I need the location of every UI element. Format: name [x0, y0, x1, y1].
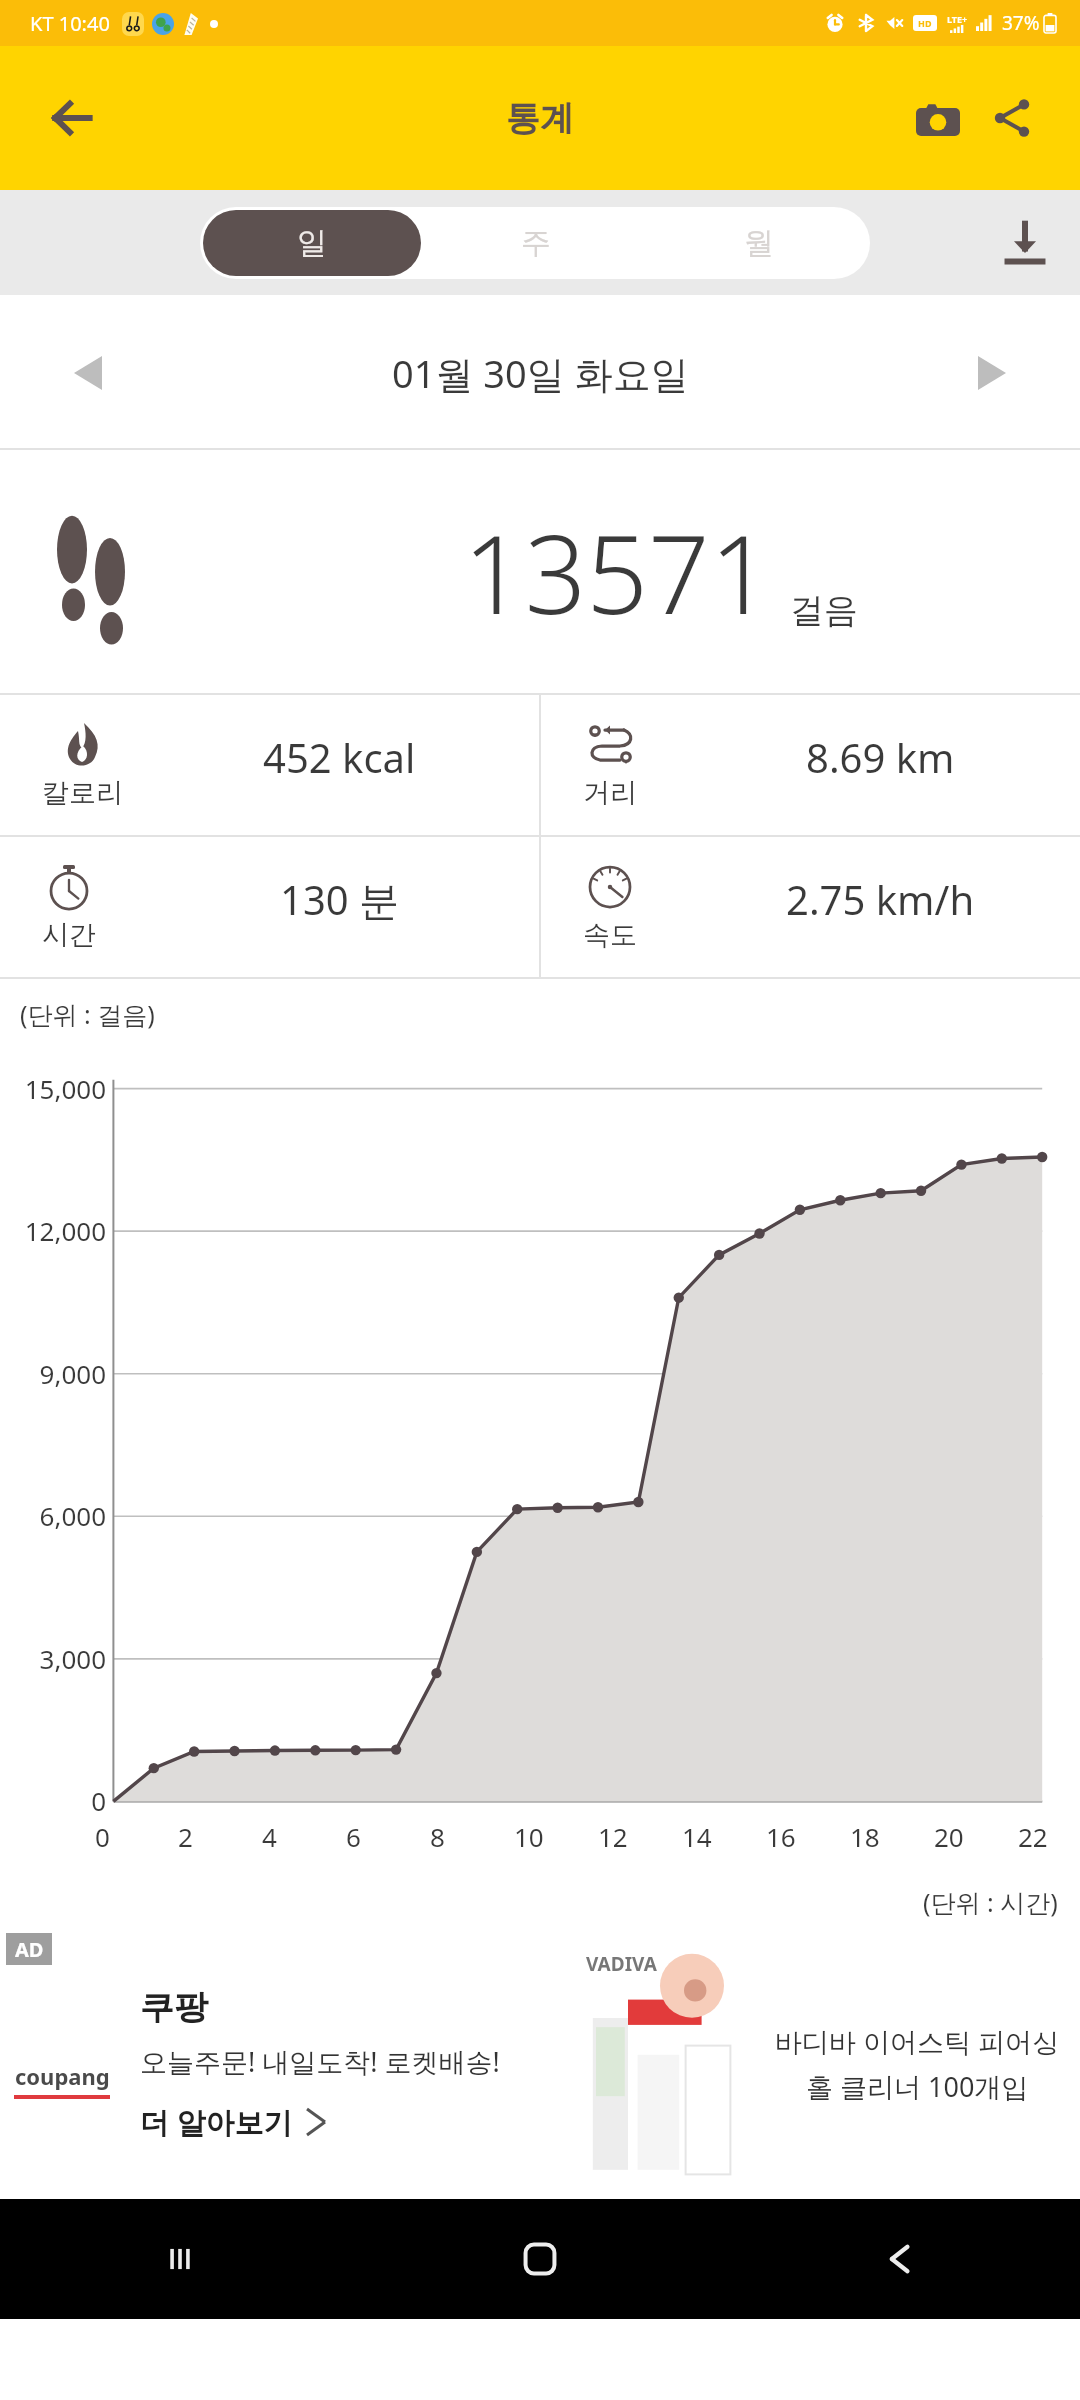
button[interactable]: 주	[427, 210, 644, 276]
staticText: (단위 : 걸음)	[20, 997, 155, 1031]
staticText: 월	[744, 224, 774, 262]
staticText: 3,000	[39, 1641, 106, 1676]
staticText: AD	[15, 1936, 44, 1963]
staticText: 8.69 km	[806, 730, 955, 784]
staticText: 8	[430, 1819, 445, 1854]
button[interactable]: Recents	[0, 2199, 360, 2319]
staticText: 통계	[506, 97, 574, 140]
staticText: 10	[514, 1819, 544, 1854]
staticText: 바디바 이어스틱 피어싱	[775, 2023, 1060, 2060]
staticText: 20	[934, 1819, 964, 1854]
staticText: HD	[918, 17, 932, 29]
staticText: 22	[1018, 1819, 1048, 1854]
staticText: 4	[262, 1819, 277, 1854]
staticText: 오늘주문! 내일도착! 로켓배송!	[140, 2043, 500, 2080]
staticText: 일	[297, 224, 327, 262]
staticText: 거리	[583, 776, 637, 810]
staticText: 9,000	[39, 1356, 106, 1391]
staticText: 더 알아보기	[140, 2102, 293, 2142]
staticText: 주	[521, 224, 551, 262]
staticText: 쿠팡	[140, 1986, 208, 2029]
button[interactable]: Next day	[952, 333, 1032, 413]
staticText: 452 kcal	[263, 730, 416, 784]
button[interactable]: 거리	[541, 695, 1080, 835]
staticText: 18	[850, 1819, 880, 1854]
staticText: 12,000	[24, 1213, 106, 1248]
staticText: 0	[91, 1783, 106, 1818]
button[interactable]: Camera	[906, 86, 970, 150]
staticText: 홀 클리너 100개입	[806, 2068, 1029, 2105]
staticText: 시간	[42, 918, 96, 952]
button[interactable]: 월	[650, 210, 867, 276]
staticText: 01월 30일 화요일	[392, 347, 689, 399]
staticText: 2	[178, 1819, 193, 1854]
button[interactable]: Back	[40, 86, 104, 150]
staticText: 속도	[583, 918, 637, 952]
staticText: 2.75 km/h	[786, 872, 975, 926]
staticText: 6	[346, 1819, 361, 1854]
button[interactable]: Back	[720, 2199, 1080, 2319]
button[interactable]: Home	[360, 2199, 720, 2319]
button[interactable]: 속도	[541, 837, 1080, 977]
staticText: coupang	[15, 2061, 110, 2091]
button[interactable]: 시간	[0, 837, 539, 977]
staticText: 12	[598, 1819, 628, 1854]
staticText: 걸음	[790, 589, 858, 632]
staticText: 37%	[1002, 10, 1040, 36]
staticText: KT 10:40	[30, 10, 110, 37]
staticText: (단위 : 시간)	[923, 1885, 1058, 1919]
staticText: VADIVA	[586, 1951, 657, 1977]
staticText: 14	[682, 1819, 712, 1854]
button[interactable]: 칼로리	[0, 695, 539, 835]
staticText: 15,000	[24, 1071, 106, 1106]
staticText: 130 분	[280, 872, 400, 927]
button[interactable]: Download	[980, 198, 1070, 288]
staticText: 6,000	[39, 1498, 106, 1533]
staticText: LTE+	[947, 13, 968, 25]
button[interactable]: 일	[203, 210, 421, 276]
staticText: 13571	[463, 499, 772, 646]
staticText: 16	[766, 1819, 796, 1854]
button[interactable]: AD	[0, 1929, 1080, 2199]
staticText: 칼로리	[42, 776, 123, 810]
button[interactable]: Share	[980, 86, 1044, 150]
staticText: 0	[95, 1819, 110, 1854]
button[interactable]: Previous day	[48, 333, 128, 413]
